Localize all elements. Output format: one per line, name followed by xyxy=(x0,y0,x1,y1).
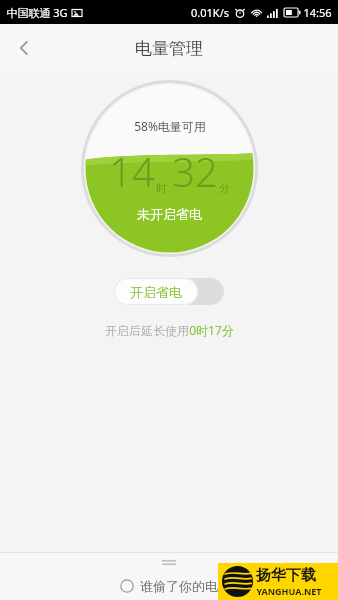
staticText: 分 xyxy=(219,181,230,195)
staticText: 开启省电 xyxy=(130,284,182,300)
staticText: 中国联通 3G xyxy=(6,5,68,20)
staticText: 58%电量可用 xyxy=(134,118,206,134)
staticText: 开启后延长使用 xyxy=(105,323,189,338)
staticText: 14:56 xyxy=(303,5,332,20)
staticText: 扬华下载 xyxy=(256,566,316,585)
staticText: 14 xyxy=(109,144,155,198)
button[interactable]: 开启省电 xyxy=(114,278,224,305)
button[interactable]: 谁偷了你的电 xyxy=(0,572,338,600)
staticText: 时 xyxy=(156,181,167,195)
staticText: 0时17分 xyxy=(189,322,234,338)
staticText: 32 xyxy=(172,144,218,198)
staticText: 0.01K/s xyxy=(191,5,229,20)
button[interactable]: Back xyxy=(0,24,48,72)
staticText: 电量管理 xyxy=(135,38,203,59)
staticText: YANGHUA.NET xyxy=(256,585,322,597)
staticText: 未开启省电 xyxy=(137,206,202,222)
staticText: 谁偷了你的电 xyxy=(140,578,218,594)
